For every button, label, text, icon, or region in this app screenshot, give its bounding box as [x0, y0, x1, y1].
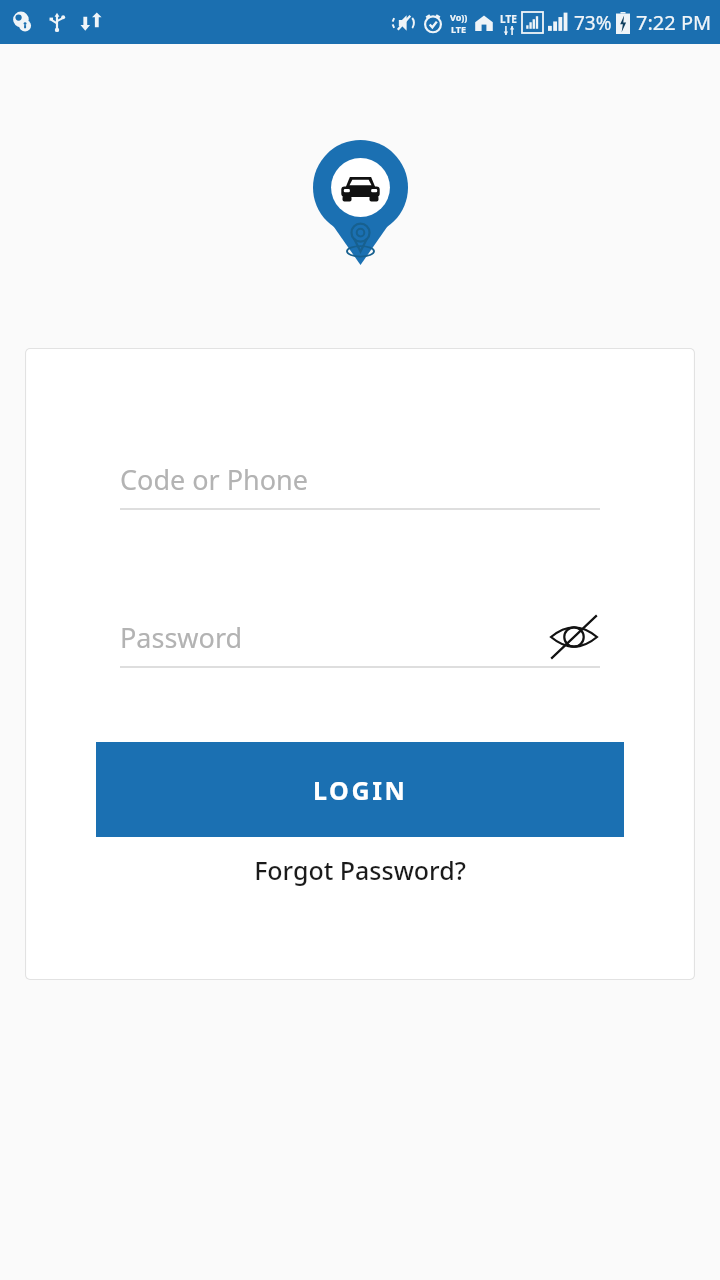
- staticText: LOGIN: [313, 773, 408, 807]
- staticText: LTE: [451, 23, 467, 35]
- button[interactable]: LOGIN: [96, 742, 624, 837]
- staticText: Vo)): [450, 11, 468, 23]
- button[interactable]: Show password: [548, 617, 600, 657]
- staticText: Code or Phone: [120, 461, 309, 498]
- staticText: 73%: [574, 10, 612, 36]
- button[interactable]: Forgot Password?: [25, 853, 695, 887]
- button[interactable]: Code or Phone: [120, 456, 600, 510]
- button[interactable]: Password: [120, 614, 600, 668]
- staticText: Forgot Password?: [254, 853, 466, 887]
- staticText: Password: [120, 619, 243, 656]
- staticText: 7:22 PM: [636, 9, 712, 36]
- staticText: LTE: [500, 12, 517, 26]
